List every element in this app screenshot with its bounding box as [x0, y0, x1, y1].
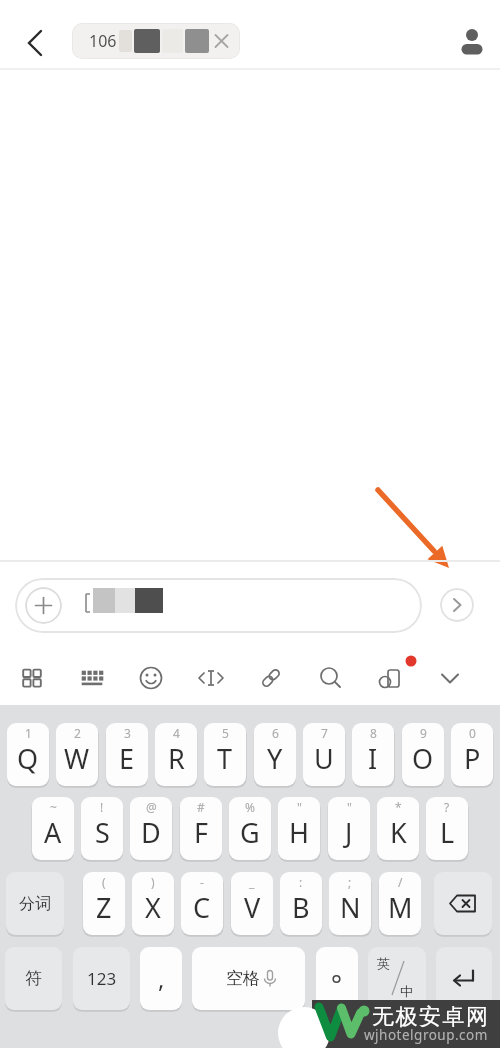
button[interactable] [436, 947, 492, 1010]
staticText: 符 [25, 968, 42, 989]
staticText: wjhotelgroup.com [364, 1026, 488, 1044]
button[interactable] [129, 656, 173, 700]
button[interactable]: % [229, 797, 271, 860]
button[interactable]: 0 [451, 723, 493, 786]
button[interactable]: # [180, 797, 222, 860]
button[interactable]: " [328, 797, 370, 860]
staticText: O [412, 740, 434, 777]
button[interactable]: ) [132, 872, 174, 935]
staticText: M [388, 889, 413, 926]
staticText: 2 [74, 725, 81, 741]
staticText: - [200, 874, 204, 890]
button[interactable]: / [379, 872, 421, 935]
staticText: A [44, 814, 62, 851]
staticText: " [347, 799, 352, 815]
staticText: C [193, 889, 211, 926]
staticText: 0 [469, 725, 476, 741]
staticText: 8 [370, 725, 377, 741]
staticText: 5 [222, 725, 229, 741]
button[interactable]: 空格 [192, 947, 305, 1010]
button[interactable]: 123 [73, 947, 130, 1010]
button[interactable]: - [181, 872, 223, 935]
staticText: I [368, 740, 378, 777]
staticText: _ [249, 874, 255, 890]
staticText: 1 [25, 725, 32, 741]
staticText: , [158, 962, 165, 995]
staticText: J [345, 814, 353, 851]
button[interactable]: 106 [72, 23, 240, 59]
staticText: E [119, 740, 135, 777]
staticText: 123 [87, 967, 117, 990]
staticText: 中 [400, 983, 413, 999]
button[interactable]: 符 [5, 947, 62, 1010]
button[interactable] [428, 656, 472, 700]
staticText: Q [17, 740, 39, 777]
staticText: R [168, 740, 185, 777]
button[interactable]: 1 [7, 723, 49, 786]
staticText: ? [444, 799, 450, 815]
staticText: " [297, 799, 302, 815]
button[interactable] [452, 22, 492, 62]
button[interactable]: 分词 [6, 872, 64, 935]
button[interactable]: 6 [254, 723, 296, 786]
staticText: H [289, 814, 310, 851]
staticText: 无极安卓网 [372, 1003, 490, 1031]
button[interactable]: @ [130, 797, 172, 860]
button[interactable] [15, 578, 422, 633]
staticText: : [299, 874, 303, 890]
staticText: S [95, 814, 110, 851]
staticText: W [64, 740, 90, 777]
staticText: 空格 [226, 968, 260, 989]
staticText: D [141, 814, 161, 851]
staticText: Y [267, 740, 283, 777]
button[interactable]: 5 [204, 723, 246, 786]
button[interactable]: _ [231, 872, 273, 935]
button[interactable]: : [280, 872, 322, 935]
button[interactable]: " [278, 797, 320, 860]
staticText: 英 [377, 955, 390, 971]
staticText: Z [96, 889, 112, 926]
staticText: ~ [50, 799, 57, 815]
staticText: B [292, 889, 310, 926]
staticText: 106 [89, 30, 117, 52]
staticText: T [217, 740, 233, 777]
staticText: % [245, 799, 255, 815]
button[interactable] [189, 656, 233, 700]
button[interactable] [70, 656, 114, 700]
staticText: # [197, 799, 205, 815]
button[interactable]: 8 [352, 723, 394, 786]
button[interactable]: * [377, 797, 419, 860]
button[interactable]: ? [426, 797, 468, 860]
button[interactable]: ! [81, 797, 123, 860]
staticText: U [314, 740, 334, 777]
button[interactable]: 英 [368, 947, 426, 1010]
button[interactable]: ; [329, 872, 371, 935]
staticText: K [390, 814, 407, 851]
staticText: X [145, 889, 161, 926]
button[interactable] [309, 656, 353, 700]
button[interactable]: 7 [303, 723, 345, 786]
staticText: 9 [420, 725, 427, 741]
staticText: L [440, 814, 455, 851]
button[interactable]: 3 [106, 723, 148, 786]
staticText: P [464, 740, 481, 777]
staticText: 7 [321, 725, 328, 741]
button[interactable] [440, 588, 474, 622]
staticText: ( [102, 874, 106, 890]
button[interactable]: , [140, 947, 182, 1010]
button[interactable] [368, 656, 412, 700]
staticText: N [340, 889, 361, 926]
button[interactable] [249, 656, 293, 700]
staticText: ) [151, 874, 155, 890]
button[interactable] [10, 656, 54, 700]
button[interactable] [434, 872, 492, 935]
button[interactable]: 2 [56, 723, 98, 786]
button[interactable]: 9 [402, 723, 444, 786]
button[interactable] [15, 22, 55, 62]
staticText: * [395, 799, 402, 815]
button[interactable] [25, 587, 62, 624]
button[interactable]: ( [83, 872, 125, 935]
button[interactable]: ~ [32, 797, 74, 860]
button[interactable]: 4 [155, 723, 197, 786]
button[interactable] [316, 947, 358, 1010]
